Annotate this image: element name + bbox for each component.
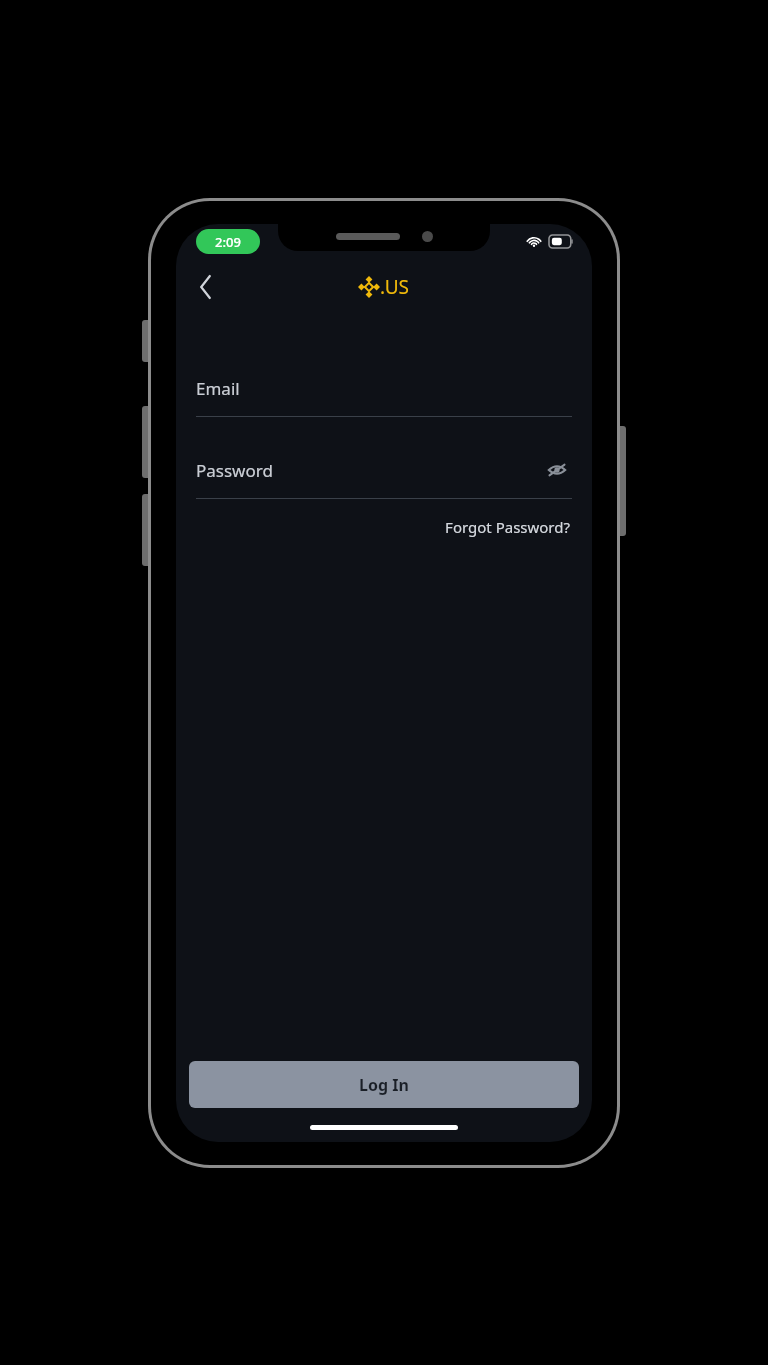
staticText: .US — [380, 274, 410, 300]
staticText: Log In — [359, 1074, 409, 1096]
button[interactable]: Log In — [189, 1061, 579, 1108]
staticText: Password — [196, 459, 273, 482]
staticText: Forgot Password? — [445, 517, 570, 537]
button[interactable]: Password — [196, 454, 572, 486]
staticText: 2:09 — [215, 233, 241, 251]
button[interactable]: Email — [196, 372, 572, 404]
button[interactable]: Back — [184, 265, 228, 309]
staticText: Email — [196, 377, 240, 400]
button[interactable]: Show password — [542, 455, 572, 485]
button[interactable]: Forgot Password? — [443, 511, 572, 543]
